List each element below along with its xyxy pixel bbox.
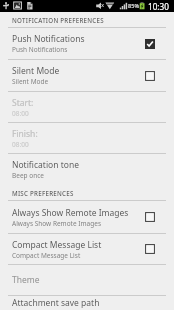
staticText: Silent Mode	[12, 65, 60, 77]
staticText: 85%	[128, 2, 140, 10]
button[interactable]: Finish:	[0, 123, 174, 153]
staticText: Compact Message List	[12, 251, 81, 260]
staticText: Always Show Remote Images	[12, 207, 129, 219]
button[interactable]: Silent Mode	[0, 60, 174, 91]
button[interactable]: Theme	[0, 265, 174, 295]
staticText: Start:	[12, 97, 34, 109]
staticText: 08:00	[12, 140, 29, 149]
staticText: 10:30	[148, 1, 169, 12]
button[interactable]: Compact Message List	[0, 234, 174, 264]
button[interactable]: Start:	[0, 92, 174, 122]
staticText: Push Notifications	[12, 45, 68, 54]
staticText: Beep once	[12, 171, 44, 180]
staticText: Always Show Remote Images	[12, 219, 102, 228]
staticText: Compact Message List	[12, 239, 102, 251]
staticText: Attachment save path	[12, 297, 100, 309]
staticText: Notification tone	[12, 159, 79, 171]
button[interactable]: Always Show Remote Images	[0, 201, 174, 233]
staticText: Silent Mode	[12, 77, 49, 86]
staticText: Theme	[12, 274, 40, 286]
button[interactable]: Attachment save path	[0, 296, 174, 310]
staticText: 08:00	[12, 109, 29, 118]
staticText: NOTIFICATION PREFERENCES	[12, 16, 104, 24]
button[interactable]: Notification tone	[0, 154, 174, 185]
staticText: MISC PREFERENCES	[12, 189, 74, 197]
button[interactable]: Push Notifications	[0, 28, 174, 59]
staticText: Finish:	[12, 128, 38, 140]
staticText: Push Notifications	[12, 33, 85, 45]
